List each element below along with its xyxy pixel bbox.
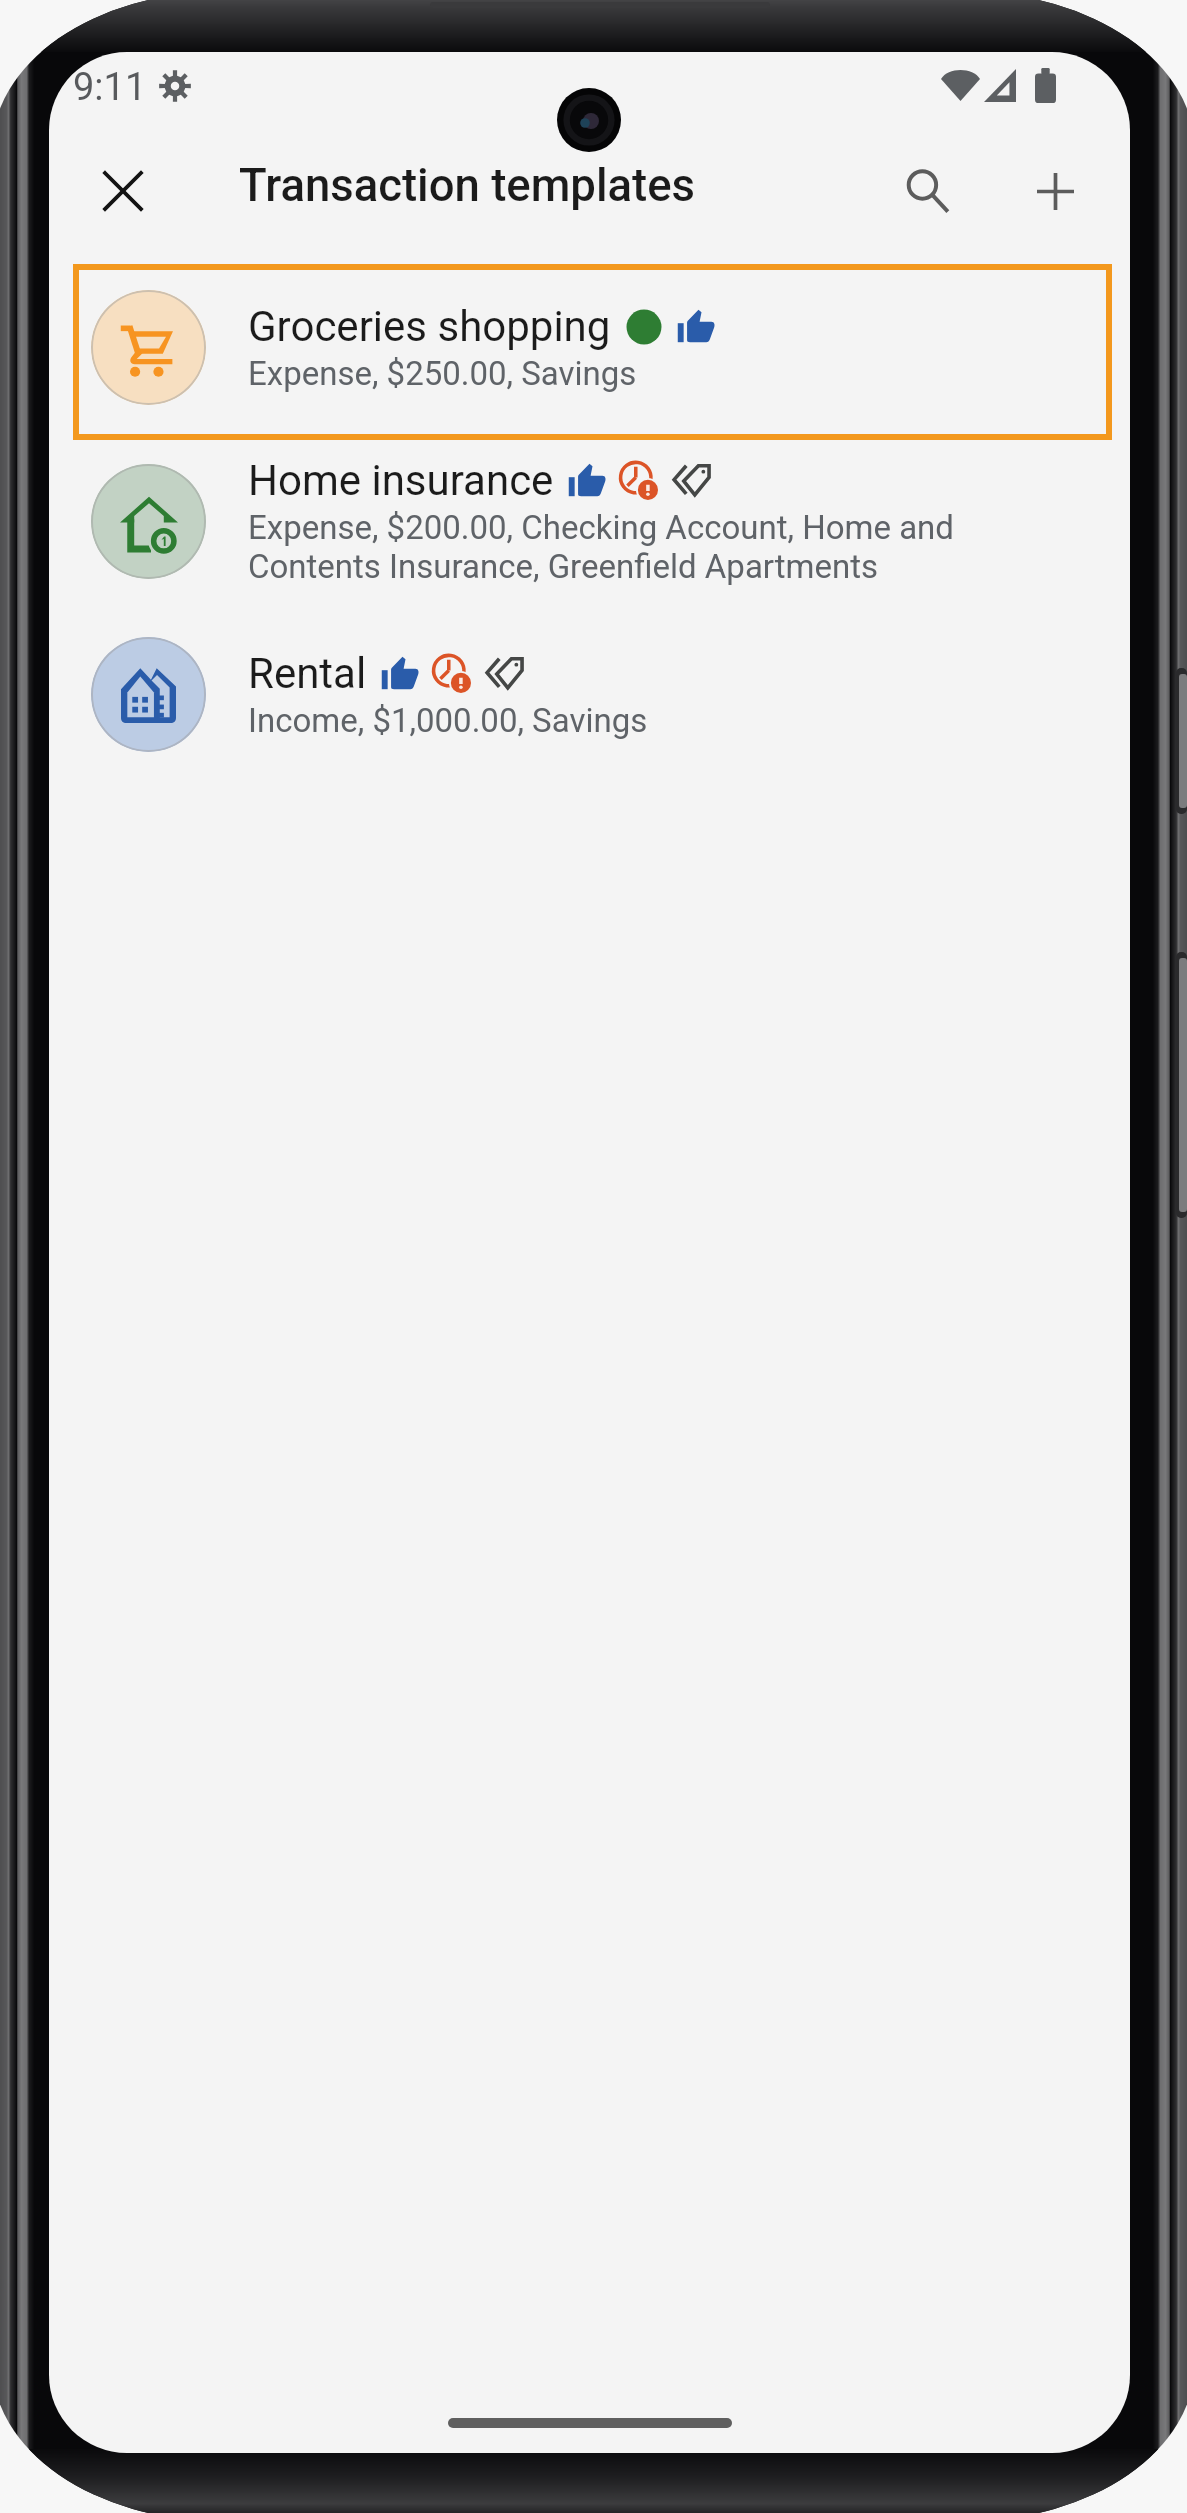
- button[interactable]: Rental: [49, 607, 1130, 781]
- button[interactable]: [73, 264, 1112, 440]
- button[interactable]: Groceries shopping: [49, 260, 1130, 434]
- button[interactable]: Close: [79, 147, 167, 235]
- staticText: Rental: [248, 649, 367, 698]
- staticText: Expense, $200.00, Checking Account, Home…: [248, 508, 954, 547]
- staticText: Income, $1,000.00, Savings: [248, 701, 648, 740]
- staticText: Groceries shopping: [248, 302, 611, 351]
- staticText: 9:11: [73, 65, 147, 110]
- staticText: Transaction templates: [239, 159, 695, 212]
- button[interactable]: Home insurance: [49, 434, 1130, 608]
- button[interactable]: Search: [884, 147, 972, 235]
- staticText: Contents Insurance, Greenfield Apartment…: [248, 547, 879, 586]
- button[interactable]: Add template: [1011, 147, 1099, 235]
- staticText: Home insurance: [248, 456, 554, 505]
- staticText: Expense, $250.00, Savings: [248, 354, 637, 393]
